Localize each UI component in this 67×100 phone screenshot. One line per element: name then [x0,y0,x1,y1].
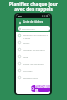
staticText: 9:41 [18,15,23,18]
button[interactable]: Courses [18,67,48,74]
staticText: Liste de tâches [23,20,44,24]
button[interactable]: Rendez-vous [18,74,48,81]
button[interactable]: Reunion du cabinet a 14h00 [18,32,48,39]
staticText: Reunion du cabinet a 14h00 [23,33,48,39]
staticText: Courses [23,69,33,72]
button[interactable]: Payer les factures [18,60,48,67]
button[interactable]: Menu [17,20,22,25]
staticText: Sport [23,41,30,44]
button[interactable]: Midi [18,53,48,60]
staticText: Midi [23,55,29,58]
button[interactable]: Sport [18,39,48,46]
button[interactable]: Rechercher [18,26,50,31]
button[interactable]: Appeler le docteur [18,46,48,53]
staticText: Appeler le docteur [23,48,45,51]
staticText: TÉLÉCHARGER [35,85,50,92]
staticText: Rechercher [22,27,35,30]
staticText: Payer les factures [23,62,44,65]
button[interactable]: TÉLÉCHARGER [31,85,50,92]
staticText: Planifiez chaque jour avec des rappels [9,1,58,12]
staticText: Rendez-vous [23,76,38,79]
